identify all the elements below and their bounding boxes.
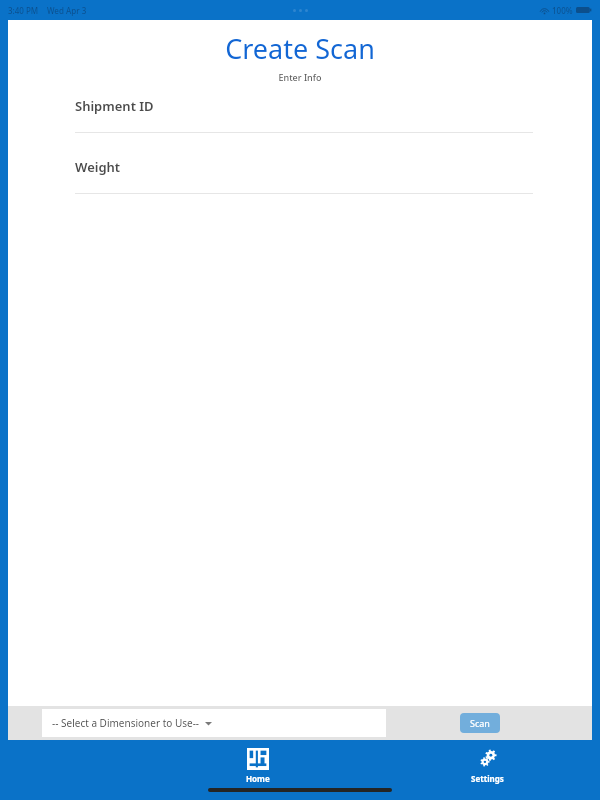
button[interactable]: Shipment ID [8,97,592,133]
button[interactable]: Home [172,740,344,784]
button[interactable]: Scan [460,713,500,733]
button[interactable]: Weight [8,158,592,194]
button[interactable]: -- Select a Dimensioner to Use-- [42,709,386,737]
staticText: Shipment ID [75,97,154,115]
staticText: Scan [470,717,490,729]
staticText: 100% [552,5,573,16]
staticText: Create Scan [8,30,592,67]
staticText: -- Select a Dimensioner to Use-- [52,716,200,730]
button[interactable]: Settings [402,740,573,784]
staticText: Home [246,773,270,784]
staticText: Weight [75,158,121,176]
staticText: Wed Apr 3 [47,5,87,16]
staticText: Enter Info [8,71,592,83]
staticText: 3:40 PM [8,5,39,16]
staticText: Settings [471,773,504,784]
